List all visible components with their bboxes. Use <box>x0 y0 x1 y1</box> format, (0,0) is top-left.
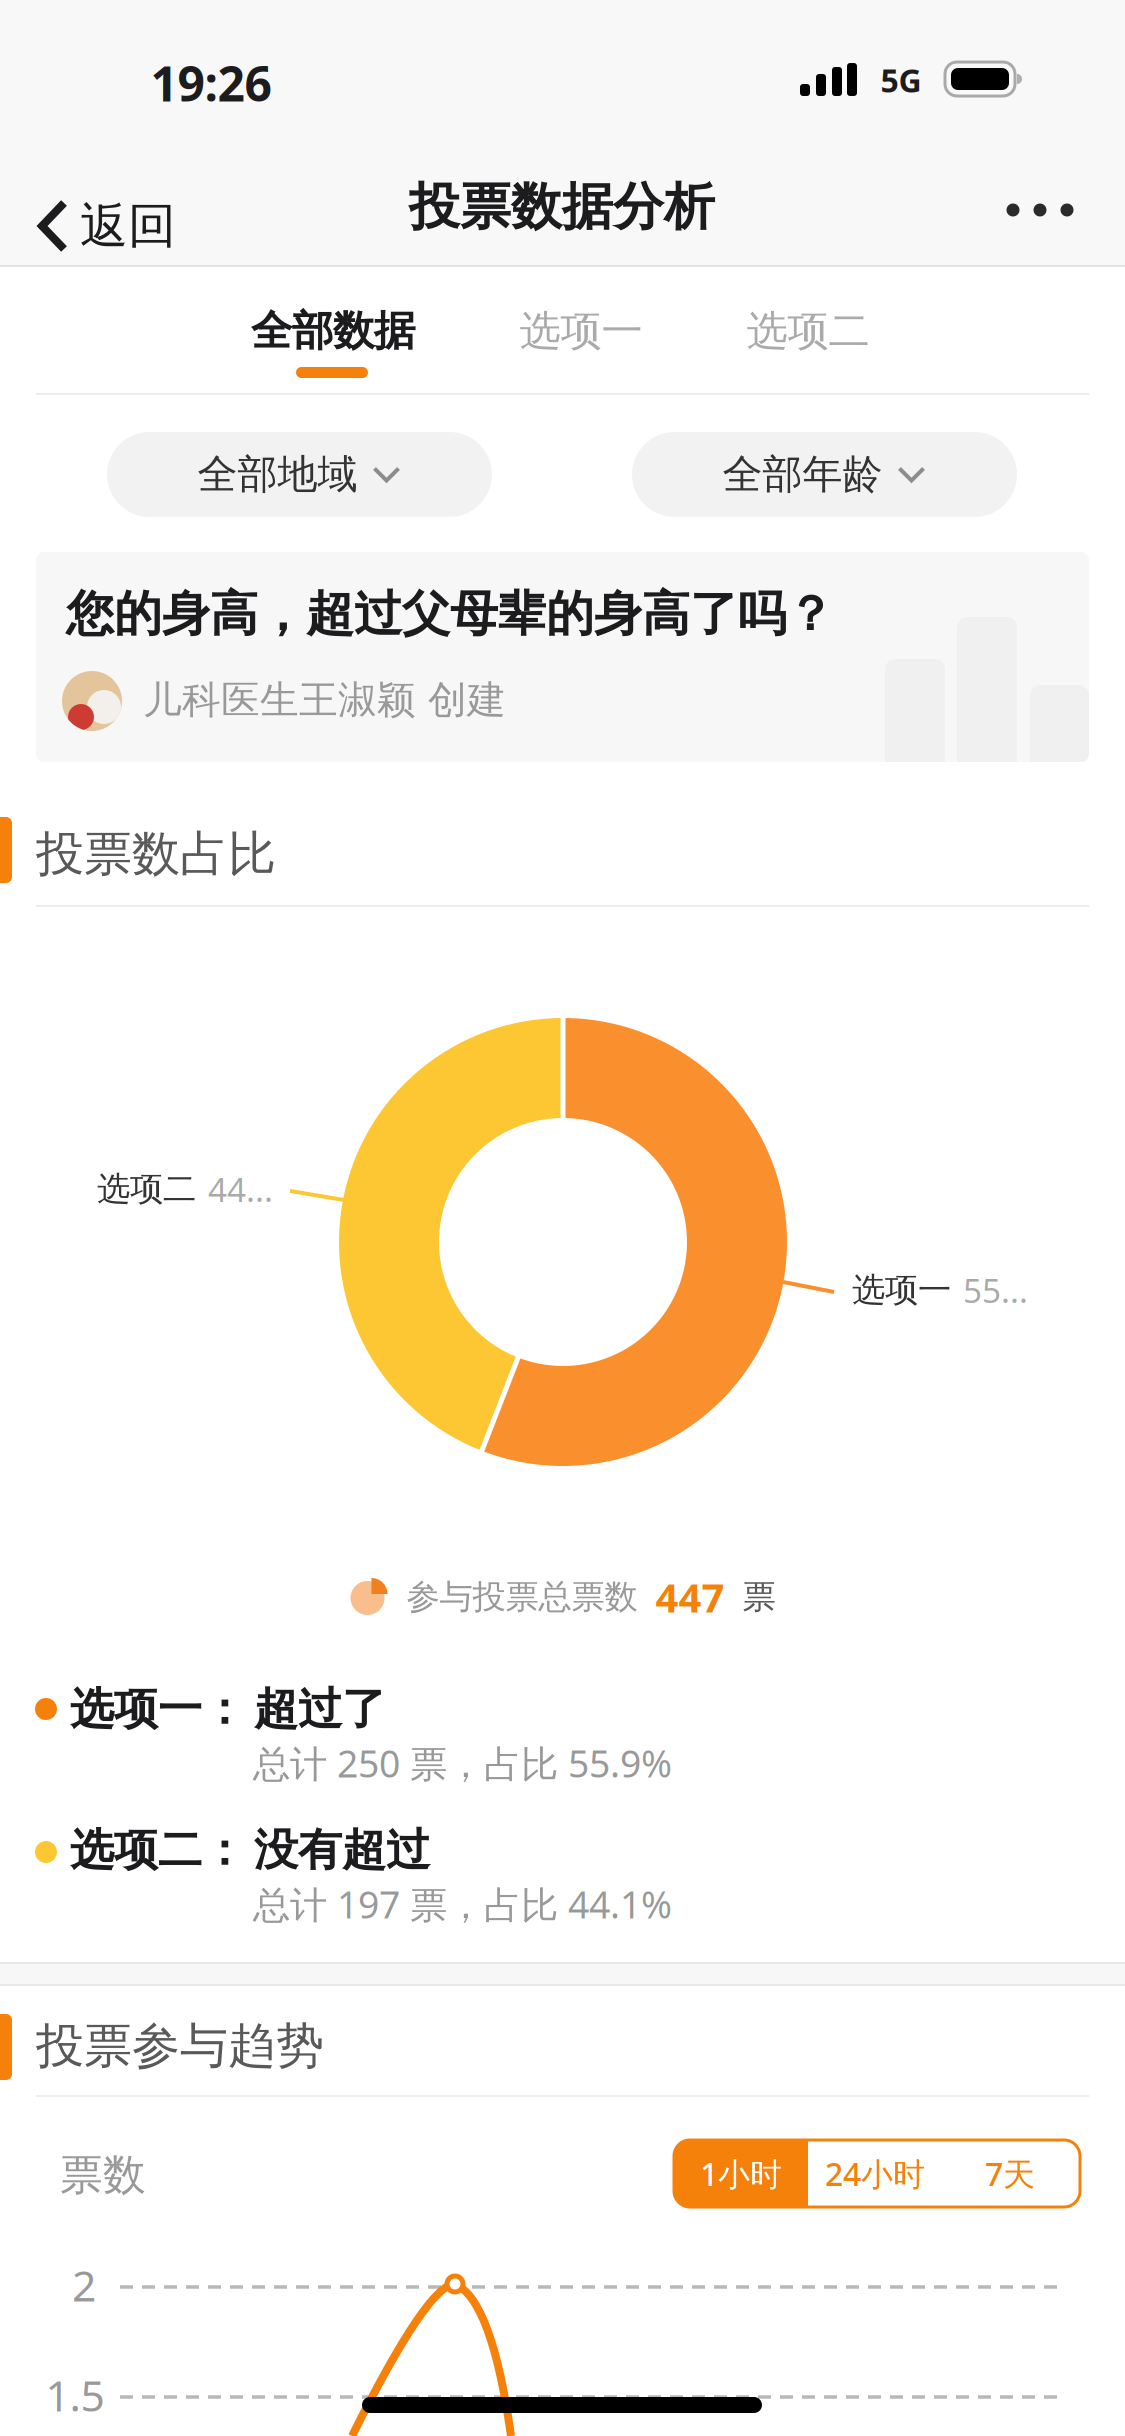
staticText: 44... <box>208 1167 273 1211</box>
staticText: 参与投票总票数 <box>406 1576 637 1617</box>
staticText: 选项一 <box>519 306 642 356</box>
staticText: 2 <box>72 2257 96 2313</box>
staticText: 7天 <box>985 2152 1035 2195</box>
staticText: 超过了 <box>254 1682 386 1736</box>
staticText: 您的身高，超过父母辈的身高了吗？ <box>66 584 834 643</box>
staticText: 投票数据分析 <box>409 176 715 238</box>
staticText: 1小时 <box>700 2152 782 2195</box>
staticText: 选项二： <box>70 1823 246 1877</box>
staticText: 投票参与趋势 <box>36 2016 324 2075</box>
button[interactable]: 更多 <box>985 170 1095 250</box>
staticText: 总计 250 票，占比 55.9% <box>253 1738 672 1788</box>
button[interactable]: 7天 <box>950 2140 1070 2207</box>
button[interactable]: 返回 <box>38 181 218 271</box>
staticText: 19:26 <box>150 51 271 115</box>
button[interactable]: 您的身高，超过父母辈的身高了吗？ <box>36 552 1089 762</box>
staticText: 票数 <box>60 2149 146 2201</box>
button[interactable]: 全部数据 <box>223 286 443 376</box>
staticText: 选项一 <box>852 1269 951 1310</box>
staticText: 447 <box>655 1570 724 1623</box>
staticText: 总计 197 票，占比 44.1% <box>253 1879 672 1929</box>
staticText: 投票数占比 <box>36 824 276 883</box>
staticText: 1.5 <box>45 2367 104 2423</box>
staticText: 儿科医生王淑颖 创建 <box>143 676 506 724</box>
button[interactable]: 选项一 <box>486 286 676 376</box>
staticText: 票 <box>742 1576 775 1617</box>
staticText: 返回 <box>80 196 176 255</box>
button[interactable]: 1小时 <box>674 2140 808 2207</box>
button[interactable]: 全部地域 <box>107 432 492 517</box>
staticText: 全部年龄 <box>722 450 882 499</box>
button[interactable]: 选项二 <box>713 286 903 376</box>
staticText: 5G <box>880 59 921 101</box>
staticText: 没有超过 <box>254 1823 430 1877</box>
button[interactable]: 24小时 <box>800 2140 950 2207</box>
staticText: 全部地域 <box>197 450 357 499</box>
staticText: 55... <box>963 1268 1028 1312</box>
staticText: 全部数据 <box>251 306 415 356</box>
staticText: 选项一： <box>70 1682 246 1736</box>
staticText: 选项二 <box>97 1168 196 1209</box>
staticText: 选项二 <box>746 306 869 356</box>
staticText: 24小时 <box>825 2152 925 2195</box>
button[interactable]: 全部年龄 <box>632 432 1017 517</box>
